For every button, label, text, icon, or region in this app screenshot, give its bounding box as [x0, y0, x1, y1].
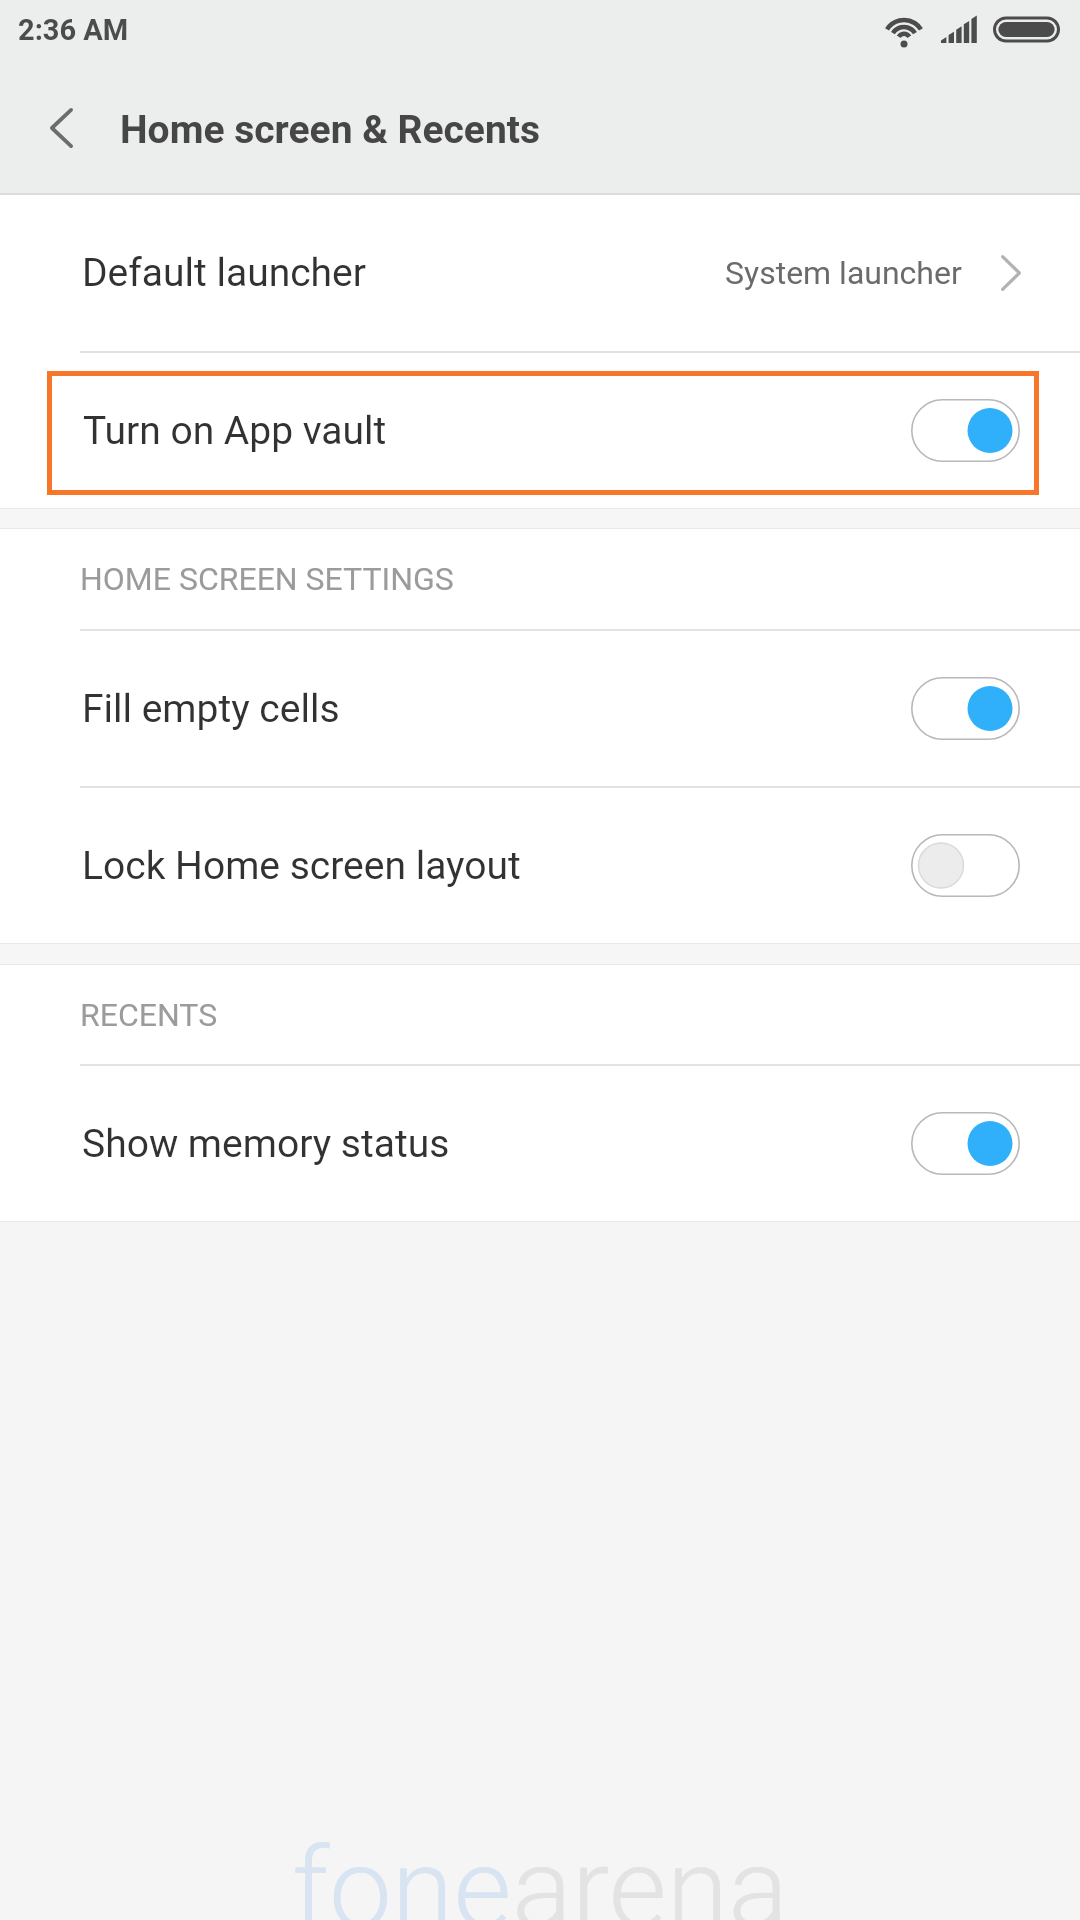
staticText: Default launcher — [82, 250, 366, 296]
staticText: Fill empty cells — [82, 686, 340, 732]
button[interactable]: Fill empty cells — [0, 631, 1080, 786]
button[interactable]: Toggle off — [911, 834, 1020, 897]
button[interactable]: Default launcher — [0, 195, 1080, 351]
staticText: Turn on App vault — [83, 408, 387, 454]
staticText: Home screen & Recents — [120, 107, 541, 153]
button[interactable]: Toggle on — [911, 399, 1020, 462]
button[interactable]: Toggle on — [911, 677, 1020, 740]
button[interactable]: Toggle on — [911, 1112, 1020, 1175]
staticText: arena — [512, 1823, 789, 1920]
staticText: RECENTS — [80, 996, 218, 1034]
staticText: Show memory status — [82, 1121, 450, 1167]
staticText: Lock Home screen layout — [82, 843, 521, 889]
staticText: System launcher — [725, 254, 962, 292]
button[interactable]: Back — [0, 70, 120, 190]
staticText: 2:36 AM — [18, 13, 129, 47]
button[interactable]: Show memory status — [0, 1066, 1080, 1221]
staticText: HOME SCREEN SETTINGS — [80, 560, 454, 598]
button[interactable]: Turn on App vault — [0, 353, 1080, 508]
staticText: fone — [292, 1823, 512, 1920]
button[interactable]: Lock Home screen layout — [0, 788, 1080, 943]
